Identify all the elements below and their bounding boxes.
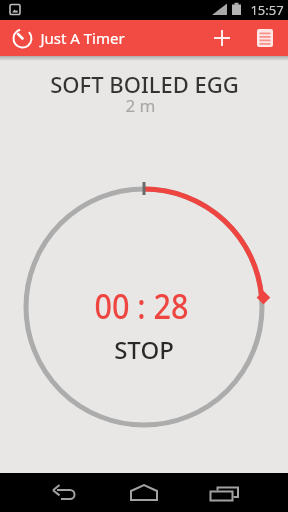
button[interactable] (0, 473, 96, 512)
button[interactable] (192, 473, 288, 512)
staticText: 2 m (125, 94, 156, 117)
staticText: SOFT BOILED EGG (50, 69, 239, 99)
staticText: STOP (114, 333, 174, 366)
staticText: 15:57 (250, 1, 284, 19)
button[interactable] (96, 473, 192, 512)
staticText: 00 : 28 (94, 283, 189, 329)
staticText: Just A Timer (40, 28, 125, 48)
button[interactable] (250, 23, 280, 53)
button[interactable] (207, 23, 237, 53)
